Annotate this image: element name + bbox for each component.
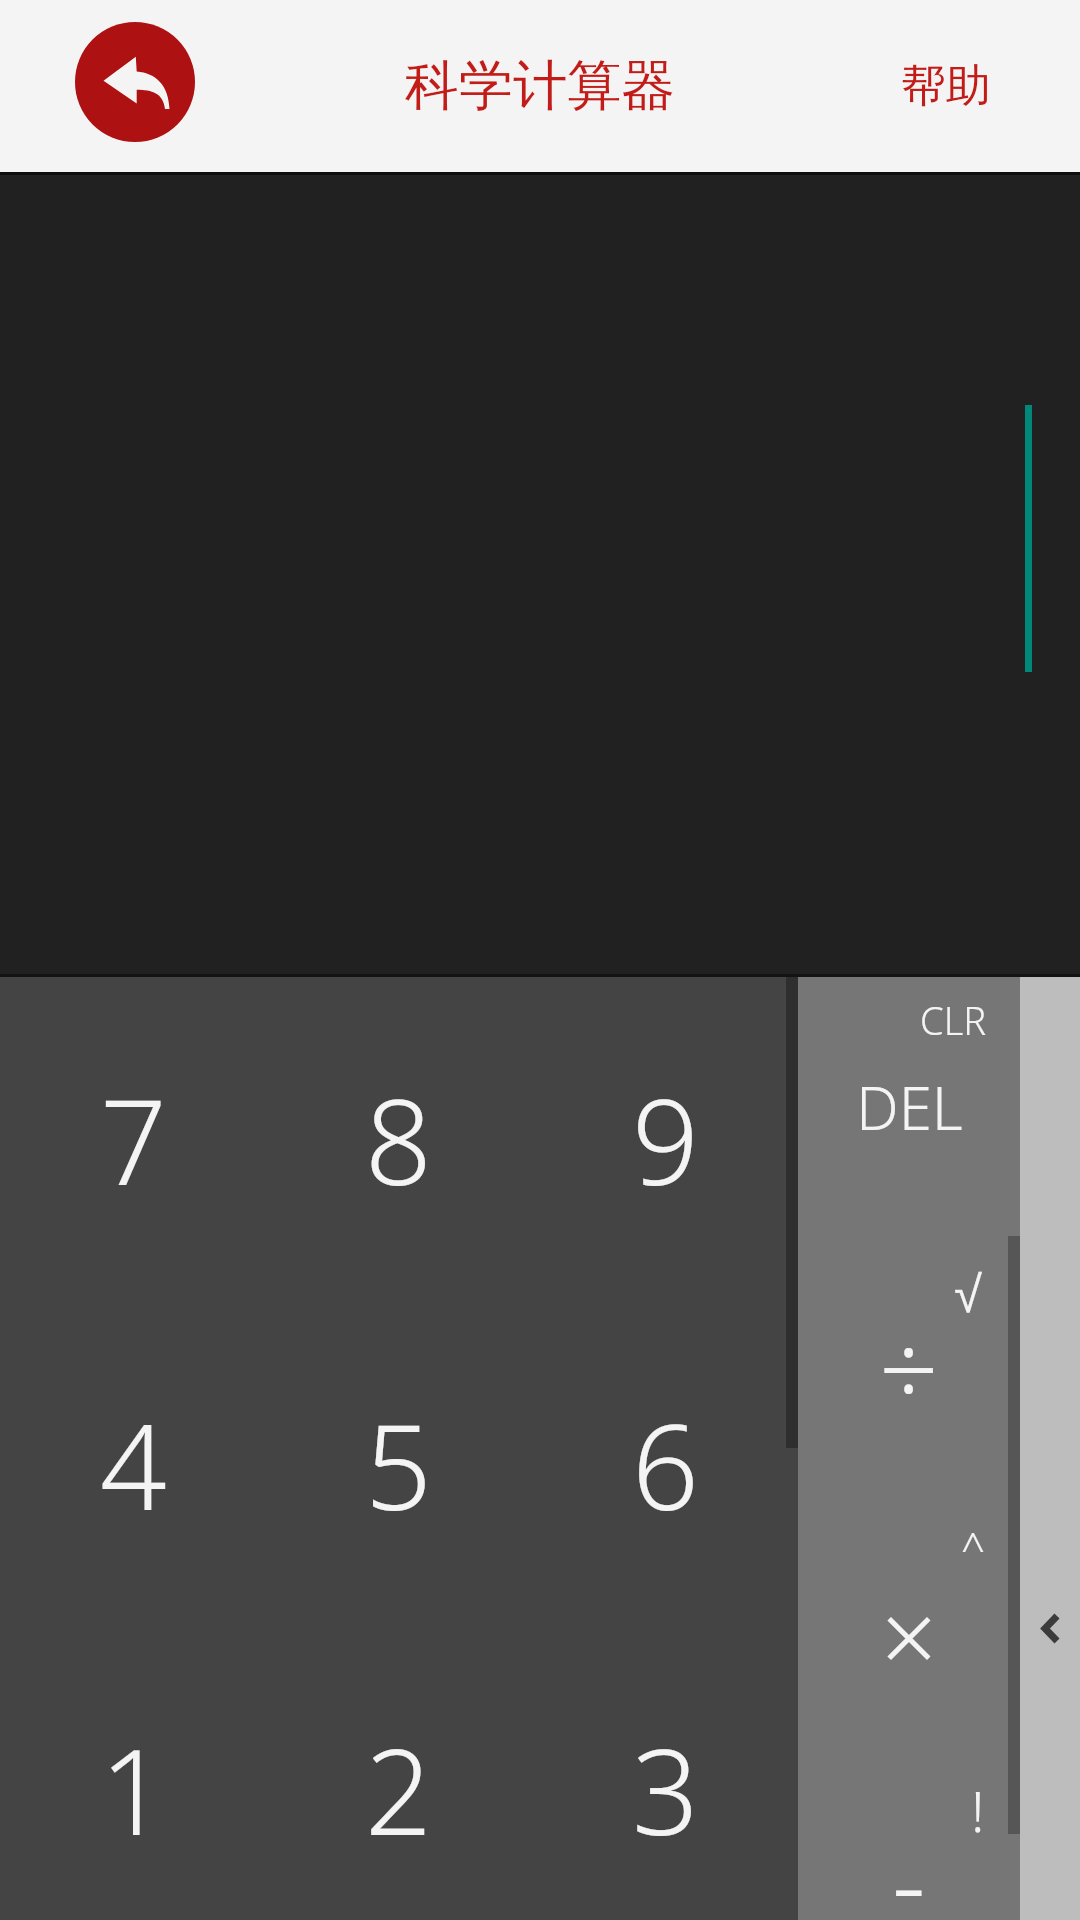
button[interactable]: 9 (531, 977, 798, 1302)
staticText: 7 (100, 1060, 167, 1219)
staticText: 4 (100, 1385, 167, 1544)
staticText: × (881, 1568, 937, 1701)
button[interactable]: 2 (266, 1627, 531, 1920)
button[interactable]: 7 (0, 977, 266, 1302)
staticText: 8 (365, 1060, 432, 1219)
button[interactable]: Show more operations (1021, 1568, 1080, 1688)
button[interactable]: ! (798, 1763, 1020, 1920)
staticText: CLR (920, 994, 987, 1046)
staticText: ! (971, 1773, 985, 1848)
button[interactable]: 3 (531, 1627, 798, 1920)
button[interactable]: 6 (531, 1302, 798, 1627)
button[interactable]: CLR (798, 977, 1020, 1239)
staticText: 科学计算器 (405, 52, 675, 120)
button[interactable]: 帮助 (861, 0, 1080, 172)
staticText: ^ (961, 1519, 985, 1576)
button[interactable]: 4 (0, 1302, 266, 1627)
staticText: - (892, 1811, 926, 1920)
staticText: 3 (632, 1710, 699, 1869)
staticText: 9 (632, 1060, 699, 1219)
button[interactable]: 5 (266, 1302, 531, 1627)
staticText: 5 (365, 1385, 432, 1544)
staticText: √ (954, 1266, 982, 1323)
staticText: DEL (856, 1066, 963, 1148)
staticText: 6 (632, 1385, 699, 1544)
button[interactable]: 8 (266, 977, 531, 1302)
staticText: 2 (365, 1710, 432, 1869)
button[interactable]: ^ (798, 1501, 1020, 1763)
button[interactable]: 1 (0, 1627, 266, 1920)
staticText: 帮助 (901, 58, 991, 115)
staticText: 1 (100, 1710, 167, 1869)
button[interactable]: √ (798, 1239, 1020, 1501)
button[interactable]: Back (75, 22, 195, 142)
staticText: ÷ (879, 1297, 939, 1439)
